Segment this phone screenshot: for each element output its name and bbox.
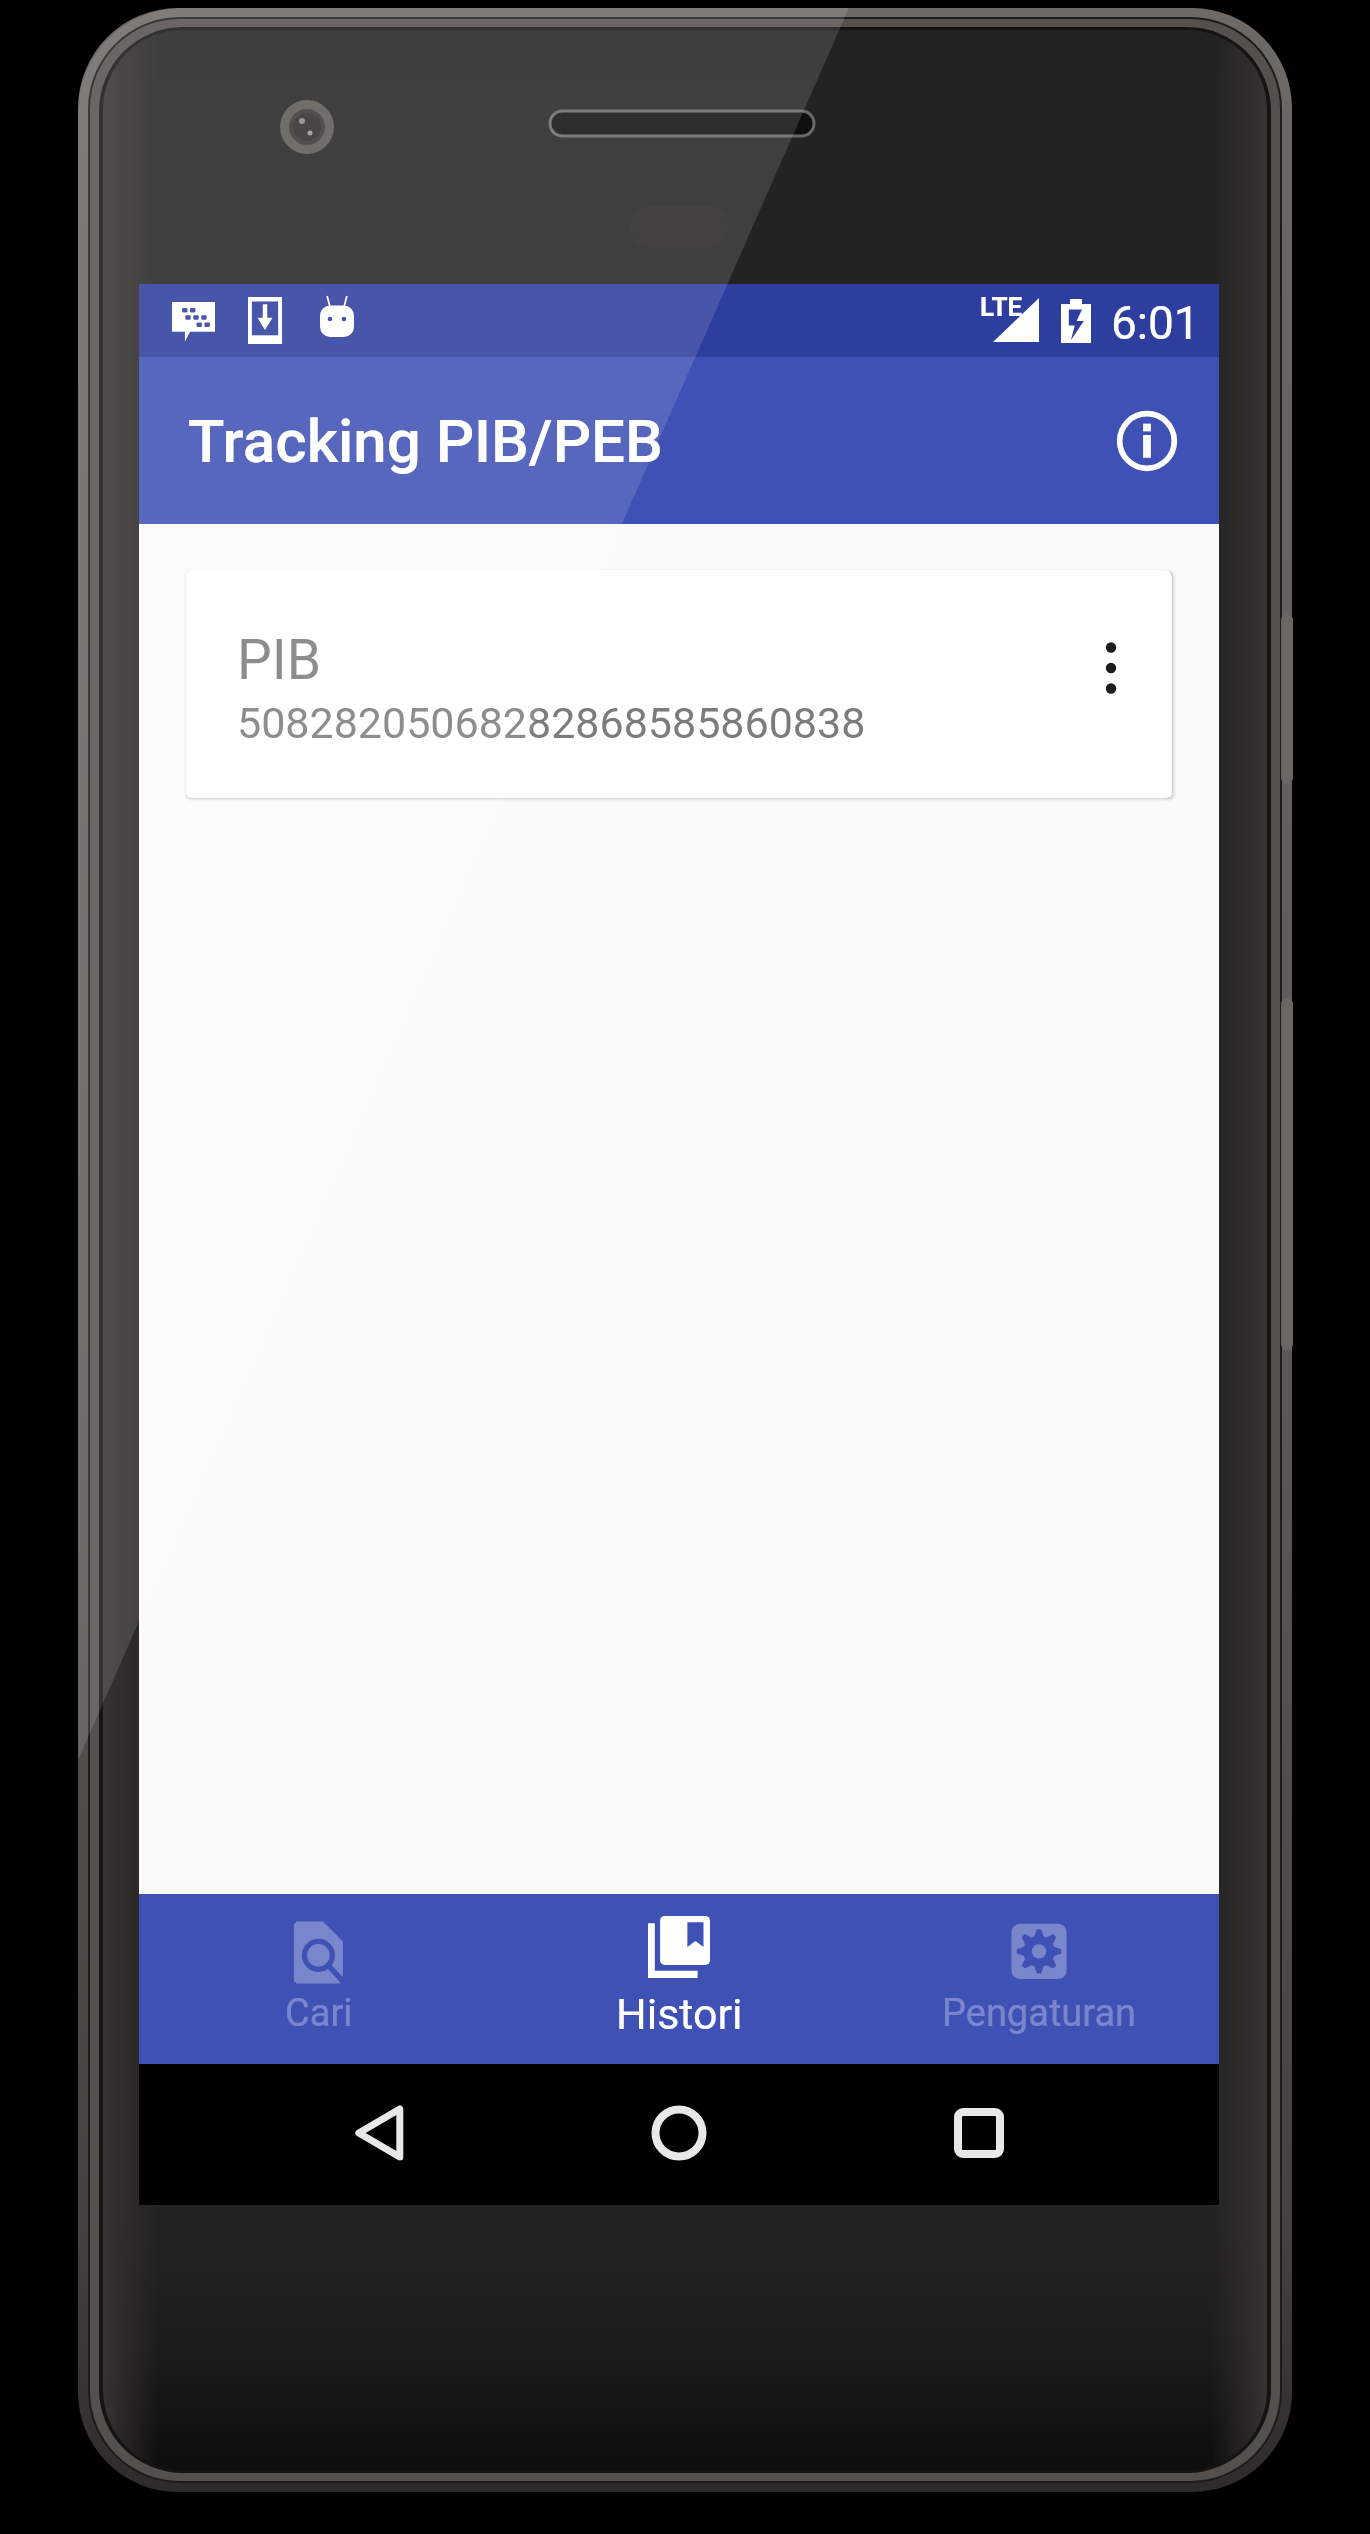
- button[interactable]: Pengaturan: [859, 1894, 1219, 2064]
- button[interactable]: More options: [1051, 608, 1171, 728]
- button[interactable]: Cari: [139, 1894, 499, 2064]
- staticText: LTE: [980, 292, 1023, 322]
- staticText: Tracking PIB/PEB: [188, 406, 663, 476]
- staticText: Pengaturan: [942, 1991, 1137, 2036]
- button[interactable]: Info: [1075, 369, 1219, 513]
- staticText: Cari: [285, 1991, 353, 2036]
- staticText: 6:01: [1111, 296, 1200, 350]
- staticText: 50828205068282868585860838: [237, 698, 866, 748]
- staticText: PIB: [237, 628, 321, 692]
- button[interactable]: Histori: [499, 1894, 859, 2064]
- button[interactable]: PIB: [186, 570, 1171, 798]
- staticText: Histori: [616, 1989, 743, 2039]
